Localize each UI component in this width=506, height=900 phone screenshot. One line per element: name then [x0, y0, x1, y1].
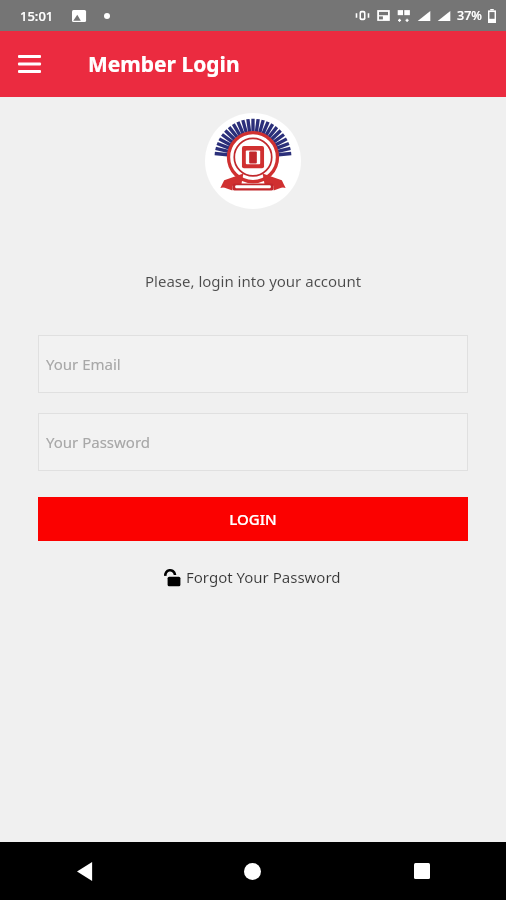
button[interactable]: Home [168, 842, 337, 900]
staticText: Forgot Your Password [186, 567, 341, 587]
button[interactable]: Your Password [38, 413, 468, 471]
staticText: Your Email [46, 354, 121, 374]
staticText: Your Password [46, 432, 151, 452]
staticText: Please, login into your account [145, 271, 362, 291]
button[interactable]: Forgot Your Password [156, 563, 351, 591]
button[interactable]: Recent apps [337, 842, 506, 900]
button[interactable]: Back [0, 842, 168, 900]
button[interactable]: Your Email [38, 335, 468, 393]
staticText: Member Login [88, 50, 240, 79]
staticText: 15:01 [20, 7, 54, 25]
button[interactable]: LOGIN [38, 497, 468, 541]
staticText: 37% [457, 7, 482, 24]
button[interactable]: Open navigation menu [8, 43, 50, 85]
staticText: LOGIN [229, 509, 277, 529]
